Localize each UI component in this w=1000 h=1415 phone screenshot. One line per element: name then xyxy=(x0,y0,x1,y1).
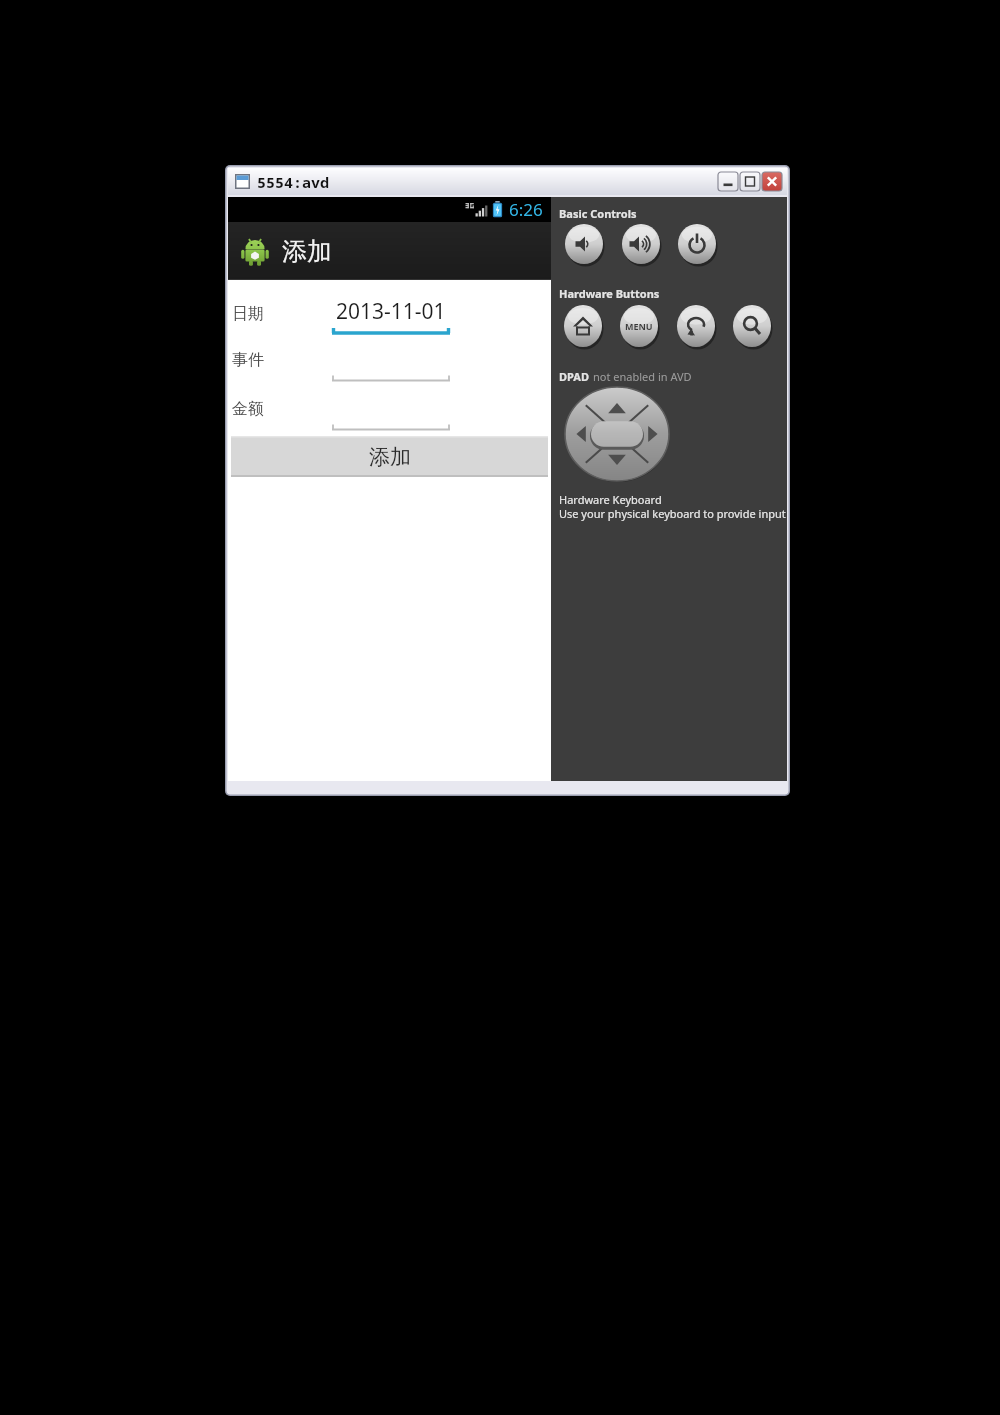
staticText: 5554:avd xyxy=(257,172,330,192)
staticText: Hardware Keyboard xyxy=(559,492,662,507)
button[interactable]: 添加 xyxy=(231,436,548,477)
button[interactable]: Volume down xyxy=(565,224,603,264)
button[interactable]: 2013-11-01 xyxy=(332,296,450,338)
staticText: 添加 xyxy=(282,236,332,267)
button[interactable]: Back xyxy=(677,305,715,347)
button[interactable]: Search xyxy=(733,305,771,347)
staticText: 事件 xyxy=(232,350,264,370)
staticText: MENU xyxy=(625,320,653,332)
button[interactable] xyxy=(332,344,450,384)
button[interactable]: Power xyxy=(678,224,716,264)
staticText: Hardware Buttons xyxy=(559,286,660,301)
button[interactable]: Menu xyxy=(620,305,658,347)
button[interactable]: D-pad xyxy=(565,387,669,481)
staticText: Use your physical keyboard to provide in… xyxy=(559,506,786,521)
staticText: 日期 xyxy=(232,304,264,324)
staticText: DPAD xyxy=(559,369,589,384)
staticText: Basic Controls xyxy=(559,206,637,221)
staticText: 6:26 xyxy=(509,198,543,221)
button[interactable] xyxy=(332,393,450,433)
button[interactable]: Volume up xyxy=(622,224,660,264)
staticText: 2013-11-01 xyxy=(336,297,446,326)
button[interactable]: Minimize xyxy=(718,172,738,191)
staticText: 金额 xyxy=(232,399,264,419)
button[interactable]: Close xyxy=(762,172,782,191)
staticText: 添加 xyxy=(369,444,411,470)
button[interactable]: Home xyxy=(564,305,602,347)
button[interactable]: Maximize xyxy=(740,172,760,191)
staticText: not enabled in AVD xyxy=(593,369,692,384)
